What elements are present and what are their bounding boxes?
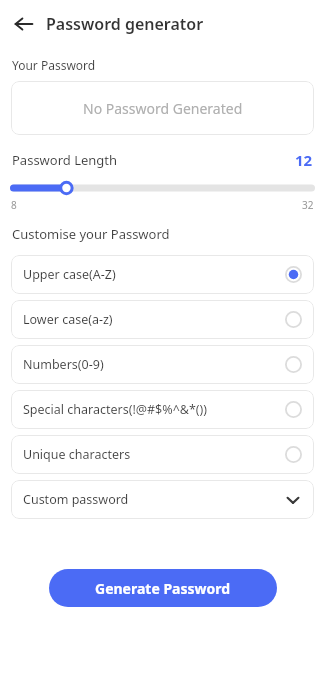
button[interactable]: Back bbox=[6, 6, 42, 42]
staticText: Special characters(!@#$%^&*()) bbox=[23, 401, 208, 418]
staticText: Customise your Password bbox=[12, 225, 170, 243]
staticText: Upper case(A-Z) bbox=[23, 266, 116, 283]
button[interactable]: Special characters(!@#$%^&*()) bbox=[11, 390, 314, 429]
staticText: Numbers(0-9) bbox=[23, 356, 104, 373]
staticText: 32 bbox=[302, 198, 314, 212]
staticText: Password Length bbox=[12, 151, 118, 169]
staticText: Password generator bbox=[46, 13, 204, 35]
button[interactable]: Lower case(a-z) bbox=[11, 300, 314, 339]
staticText: Lower case(a-z) bbox=[23, 311, 113, 328]
other: Expand bbox=[283, 490, 303, 510]
staticText: 12 bbox=[295, 150, 313, 170]
button[interactable]: Numbers(0-9) bbox=[11, 345, 314, 384]
staticText: Generate Password bbox=[95, 579, 231, 598]
button[interactable]: Unique characters bbox=[11, 435, 314, 474]
button[interactable]: Generate Password bbox=[49, 569, 277, 607]
staticText: Unique characters bbox=[23, 446, 131, 463]
staticText: No Password Generated bbox=[83, 99, 243, 118]
button[interactable]: Custom password bbox=[11, 480, 314, 519]
staticText: 8 bbox=[11, 198, 17, 212]
staticText: Custom password bbox=[23, 491, 129, 508]
staticText: Your Password bbox=[12, 57, 96, 73]
button[interactable]: Upper case(A-Z) bbox=[11, 255, 314, 294]
button[interactable] bbox=[10, 179, 315, 197]
button[interactable]: No Password Generated bbox=[11, 81, 314, 135]
